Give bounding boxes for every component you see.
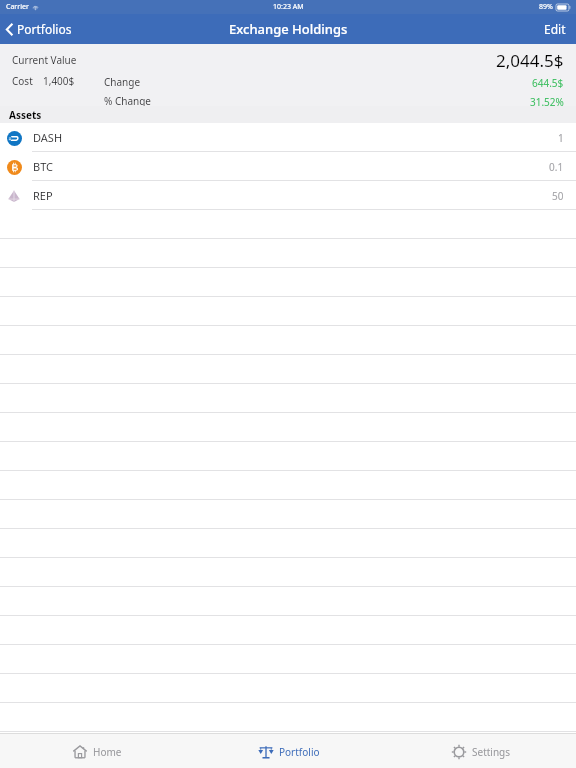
staticText: Current Value <box>12 53 77 67</box>
staticText: BTC <box>33 159 53 174</box>
staticText: Carrier <box>6 2 29 12</box>
staticText: 0.1 <box>549 160 564 174</box>
staticText: Exchange Holdings <box>229 20 348 38</box>
staticText: 10:23 AM <box>273 2 304 12</box>
button[interactable]: DASH <box>0 123 576 152</box>
staticText: Change <box>104 75 141 89</box>
button[interactable]: REP <box>0 181 576 210</box>
button[interactable]: Portfolio <box>192 734 384 768</box>
staticText: 2,044.5$ <box>496 49 564 72</box>
staticText: Portfolio <box>279 745 320 759</box>
staticText: Home <box>93 745 122 759</box>
button[interactable]: Settings <box>384 734 576 768</box>
staticText: Edit <box>544 21 566 37</box>
button[interactable]: Portfolios <box>0 17 80 41</box>
staticText: Cost <box>12 74 33 88</box>
button[interactable]: BTC <box>0 152 576 181</box>
staticText: 1 <box>558 131 564 145</box>
staticText: 50 <box>552 189 564 203</box>
staticText: % Change <box>104 94 151 106</box>
staticText: 31.52% <box>530 95 564 106</box>
staticText: Assets <box>9 108 42 122</box>
staticText: 644.5$ <box>532 76 564 90</box>
staticText: 1,400$ <box>43 74 75 88</box>
staticText: DASH <box>33 130 63 145</box>
staticText: REP <box>33 188 53 203</box>
button[interactable]: Edit <box>534 16 576 42</box>
staticText: Settings <box>472 745 511 759</box>
button[interactable]: Home <box>0 734 192 768</box>
staticText: 89% <box>539 2 553 12</box>
staticText: Portfolios <box>17 21 72 37</box>
